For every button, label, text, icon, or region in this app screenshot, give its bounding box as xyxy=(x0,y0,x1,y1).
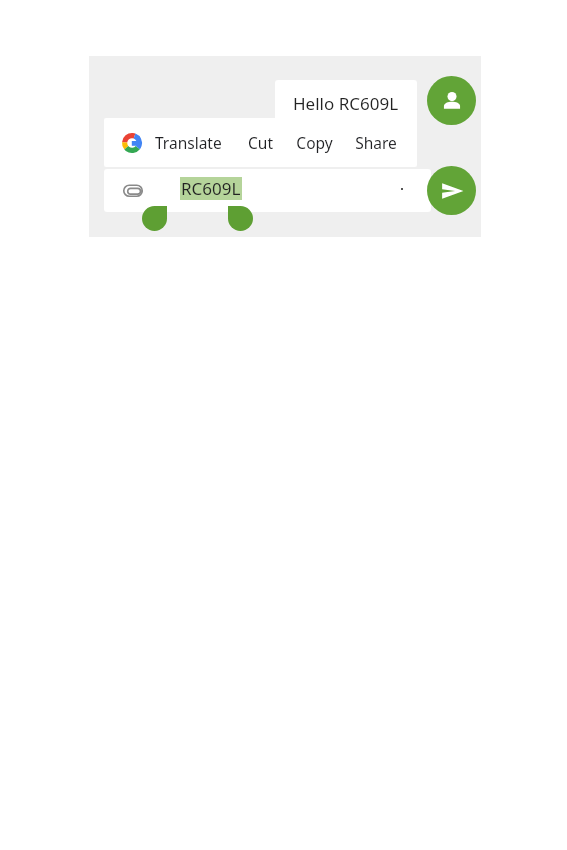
button[interactable]: Selection start handle xyxy=(142,206,167,231)
button[interactable]: Cut xyxy=(248,118,273,167)
button[interactable]: Attach file xyxy=(121,179,145,203)
button[interactable]: Selection end handle xyxy=(228,206,253,231)
button[interactable]: Copy xyxy=(296,118,333,167)
button[interactable]: Contact avatar xyxy=(427,76,476,125)
button[interactable]: Hello RC609L xyxy=(275,80,417,126)
button[interactable]: Translate xyxy=(122,118,222,167)
staticText: RC609L xyxy=(181,177,241,200)
staticText: Translate xyxy=(155,132,222,153)
staticText: Cut xyxy=(248,132,273,153)
staticText: Copy xyxy=(296,132,333,153)
staticText: Share xyxy=(355,132,397,153)
staticText: Hello RC609L xyxy=(293,92,399,115)
button[interactable]: Send xyxy=(427,166,476,215)
button[interactable]: Share xyxy=(355,118,397,167)
